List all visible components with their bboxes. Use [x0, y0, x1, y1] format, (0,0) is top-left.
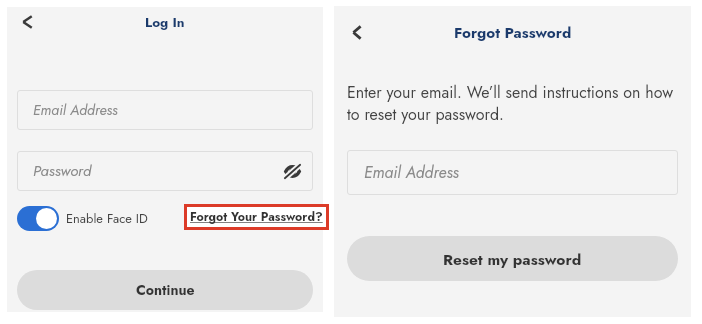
staticText: Enable Face ID	[66, 209, 148, 228]
button[interactable]: Forgot Your Password?	[184, 204, 329, 230]
button[interactable]: Back	[12, 9, 42, 35]
staticText: Forgot Password	[454, 22, 572, 44]
staticText: Continue	[136, 280, 195, 300]
button[interactable]: Reset my password	[347, 236, 678, 281]
button[interactable]: Email Address	[17, 90, 313, 130]
staticText: Password	[33, 160, 92, 182]
button[interactable]: Enable Face ID	[17, 206, 148, 231]
staticText: Enter your email. We’ll send instruction…	[347, 81, 678, 126]
staticText: Log In	[145, 13, 185, 33]
button[interactable]: Password	[17, 151, 313, 191]
staticText: Forgot Your Password?	[190, 208, 323, 226]
staticText: Email Address	[364, 161, 459, 184]
staticText: Reset my password	[443, 248, 582, 270]
button[interactable]: Back	[341, 18, 373, 46]
button[interactable]: Continue	[17, 270, 313, 310]
button[interactable]: Show password	[280, 159, 304, 183]
button[interactable]: Email Address	[347, 150, 678, 195]
staticText: Email Address	[33, 100, 118, 121]
